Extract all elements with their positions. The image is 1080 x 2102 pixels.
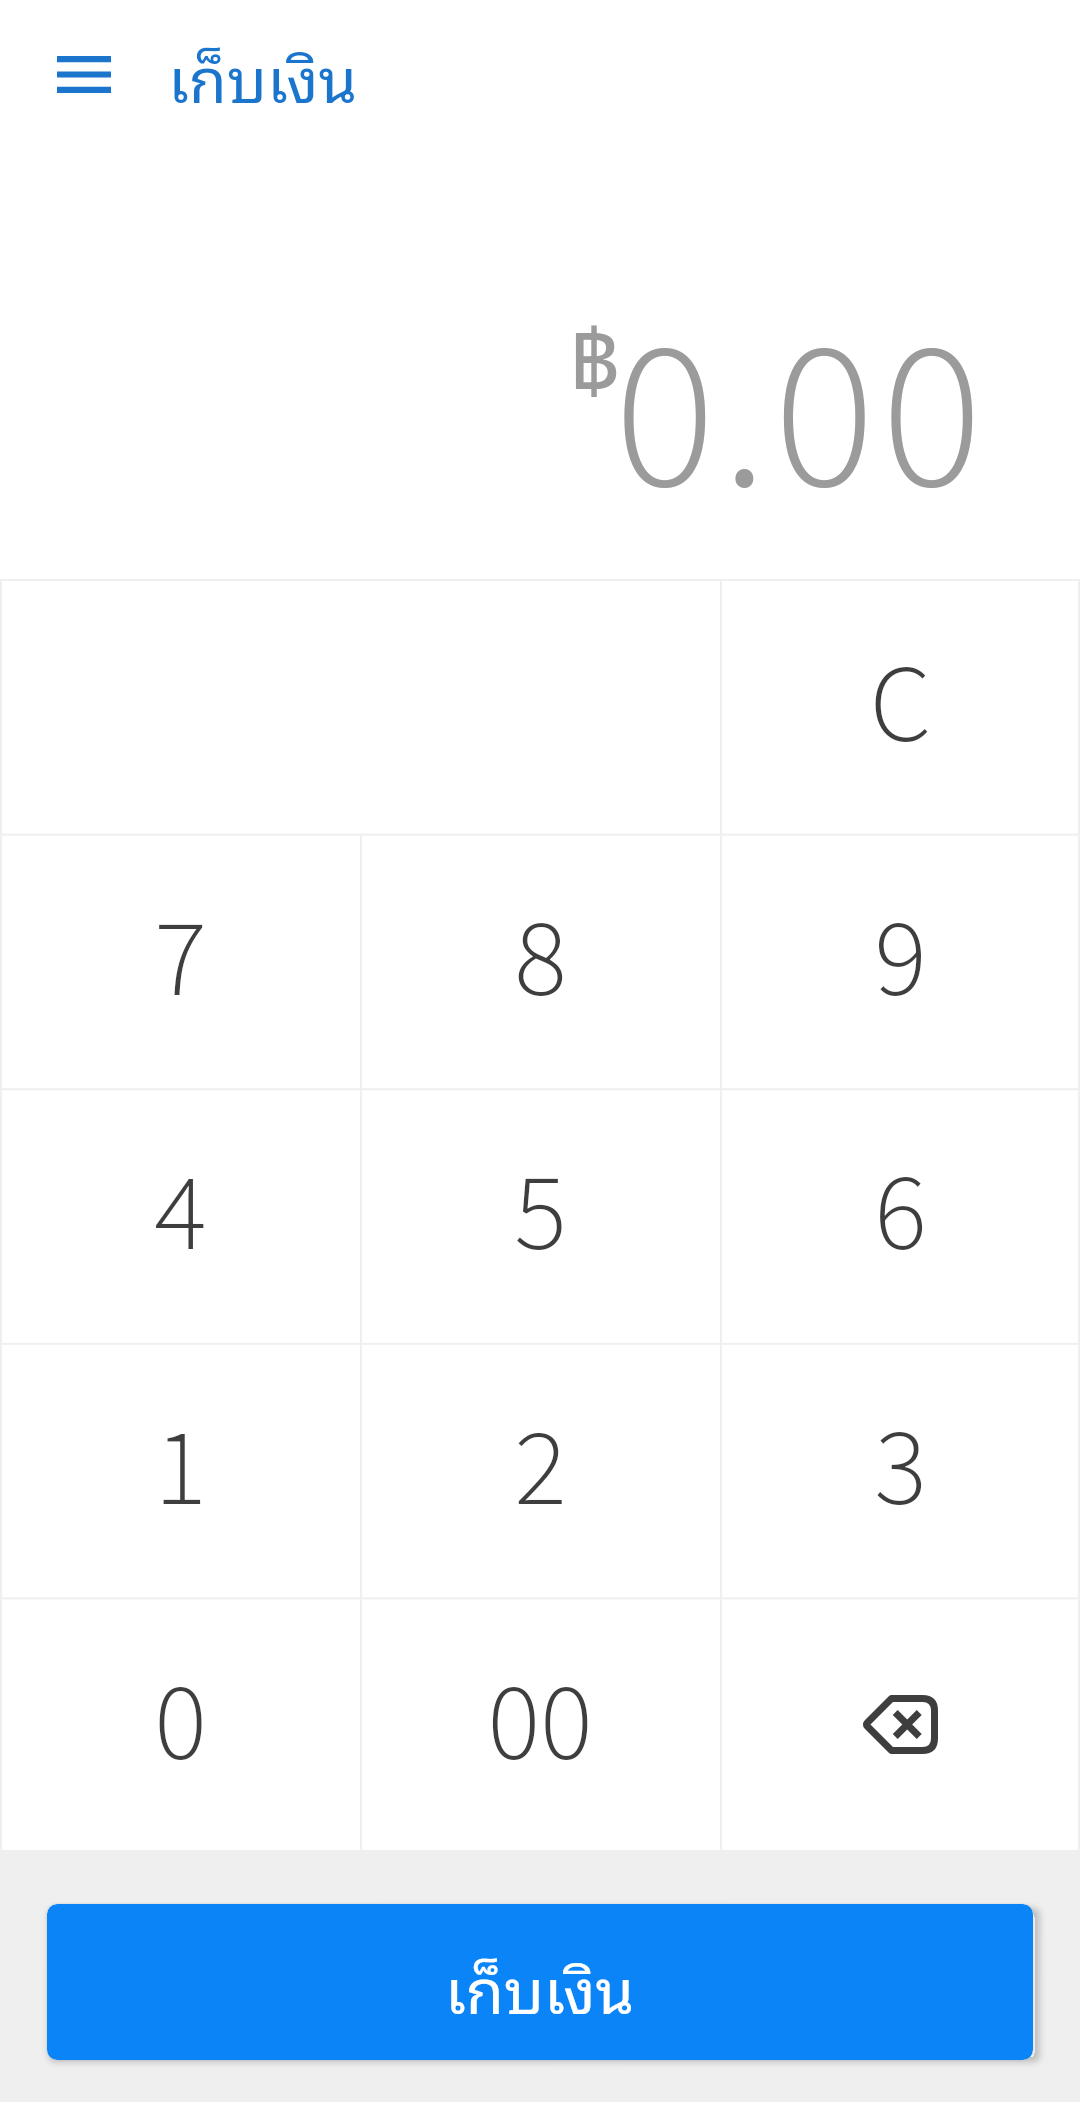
- button[interactable]: 8: [360, 833, 720, 1087]
- staticText: เก็บเงิน: [168, 25, 358, 124]
- button[interactable]: 0: [0, 1597, 360, 1852]
- staticText: 3: [874, 1391, 927, 1548]
- button[interactable]: 2: [360, 1342, 720, 1597]
- staticText: 6: [874, 1136, 927, 1293]
- button[interactable]: Backspace: [720, 1597, 1080, 1852]
- button[interactable]: 4: [0, 1087, 360, 1342]
- staticText: เก็บเงิน: [445, 1936, 635, 2035]
- button[interactable]: 6: [720, 1087, 1080, 1342]
- button[interactable]: Menu: [30, 19, 138, 129]
- button[interactable]: C: [720, 579, 1080, 833]
- staticText: 2: [514, 1391, 567, 1548]
- button[interactable]: 3: [720, 1342, 1080, 1597]
- staticText: 0: [154, 1646, 207, 1803]
- staticText: ฿: [569, 299, 621, 432]
- staticText: 8: [514, 882, 567, 1039]
- button[interactable]: 1: [0, 1342, 360, 1597]
- staticText: 0.00: [614, 268, 989, 570]
- staticText: 9: [874, 882, 927, 1039]
- button[interactable]: เก็บเงิน: [47, 1904, 1033, 2060]
- button[interactable]: 00: [360, 1597, 720, 1852]
- staticText: 7: [154, 882, 207, 1039]
- button[interactable]: 9: [720, 833, 1080, 1087]
- button[interactable]: 7: [0, 833, 360, 1087]
- staticText: 5: [514, 1136, 567, 1293]
- button[interactable]: 5: [360, 1087, 720, 1342]
- staticText: C: [869, 628, 932, 785]
- staticText: 00: [487, 1646, 593, 1803]
- staticText: 4: [154, 1136, 207, 1293]
- staticText: 1: [154, 1391, 207, 1548]
